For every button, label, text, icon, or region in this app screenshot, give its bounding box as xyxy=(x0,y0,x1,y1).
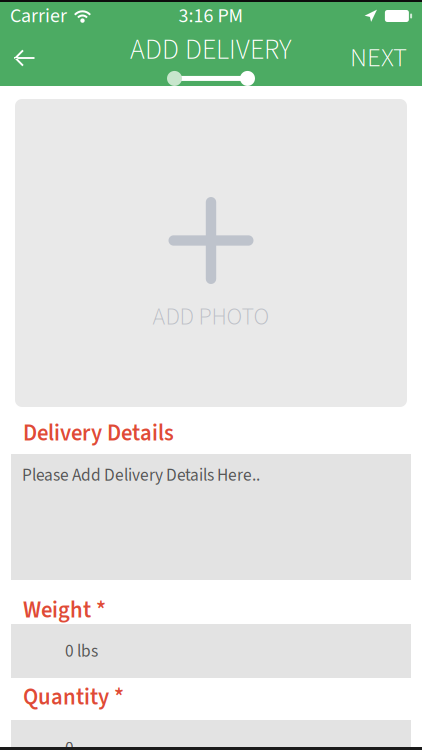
staticText: NEXT xyxy=(350,39,407,77)
button[interactable]: Please Add Delivery Details Here.. xyxy=(11,454,411,580)
staticText: ADD PHOTO xyxy=(152,300,269,334)
button[interactable]: 0 xyxy=(11,720,411,747)
staticText: Delivery Details xyxy=(23,417,174,450)
button[interactable]: Back xyxy=(0,30,49,86)
staticText: Quantity * xyxy=(23,681,124,714)
button[interactable]: 0 lbs xyxy=(11,624,411,678)
staticText: Weight * xyxy=(23,594,106,627)
staticText: Carrier xyxy=(10,2,67,30)
staticText: Please Add Delivery Details Here.. xyxy=(22,463,260,488)
button[interactable]: Add Photo xyxy=(15,99,407,407)
staticText: 3:16 PM xyxy=(178,2,243,30)
staticText: 0 lbs xyxy=(65,639,98,664)
staticText: 0 xyxy=(65,736,74,750)
staticText: ADD DELIVERY xyxy=(130,30,292,70)
button[interactable]: NEXT xyxy=(335,30,422,86)
